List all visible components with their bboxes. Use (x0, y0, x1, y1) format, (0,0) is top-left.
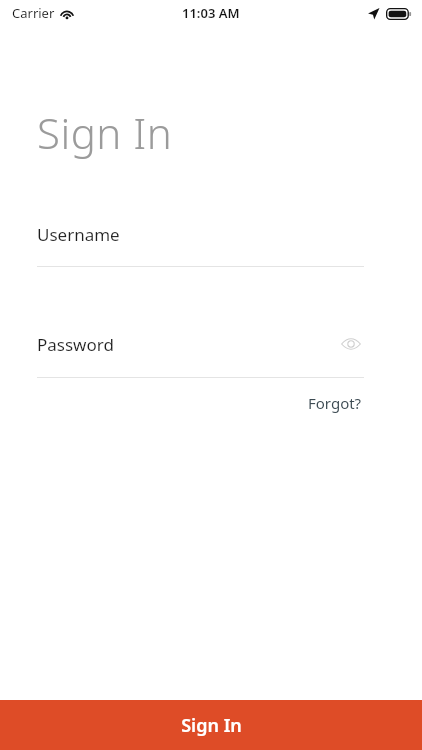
button[interactable]: Password (37, 331, 364, 357)
button[interactable]: Show password (338, 331, 364, 357)
staticText: Username (37, 223, 120, 246)
staticText: Forgot? (308, 393, 362, 413)
button[interactable]: Username (37, 223, 364, 246)
button[interactable]: Sign In (0, 700, 422, 750)
staticText: Sign In (37, 104, 173, 161)
button[interactable]: Forgot? (306, 390, 364, 416)
staticText: Password (37, 333, 114, 356)
staticText: Carrier (12, 4, 55, 22)
staticText: Sign In (181, 713, 242, 738)
staticText: 11:03 AM (182, 4, 240, 22)
